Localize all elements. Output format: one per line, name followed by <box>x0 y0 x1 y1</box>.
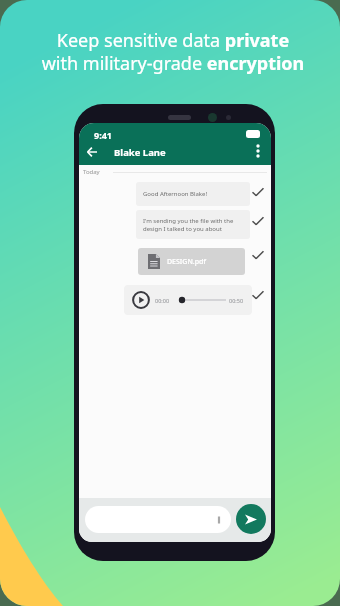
button[interactable]: Attach file <box>85 506 231 533</box>
staticText: 9:41 <box>94 129 112 141</box>
staticText: 00:00 <box>155 297 170 304</box>
other: Play <box>132 291 150 309</box>
button[interactable]: Send <box>236 504 266 534</box>
staticText: DESIGN.pdf <box>167 257 206 267</box>
button[interactable]: DESIGN.pdf <box>138 248 245 275</box>
button[interactable]: I'm sending you the file with the design… <box>136 210 250 239</box>
button[interactable]: Good Afternoon Blake! <box>136 182 250 206</box>
button[interactable]: Back <box>84 144 100 160</box>
staticText: I'm sending you the file with the design… <box>143 217 234 233</box>
other: Attach file <box>214 515 224 525</box>
staticText: Good Afternoon Blake! <box>143 190 208 198</box>
staticText: Blake Lane <box>114 146 166 159</box>
button[interactable]: Play <box>124 285 252 315</box>
button[interactable]: More options <box>251 144 265 158</box>
staticText: Keep sensitive data private with militar… <box>6 28 340 75</box>
staticText: 00:50 <box>229 297 244 304</box>
staticText: Today <box>83 168 100 176</box>
